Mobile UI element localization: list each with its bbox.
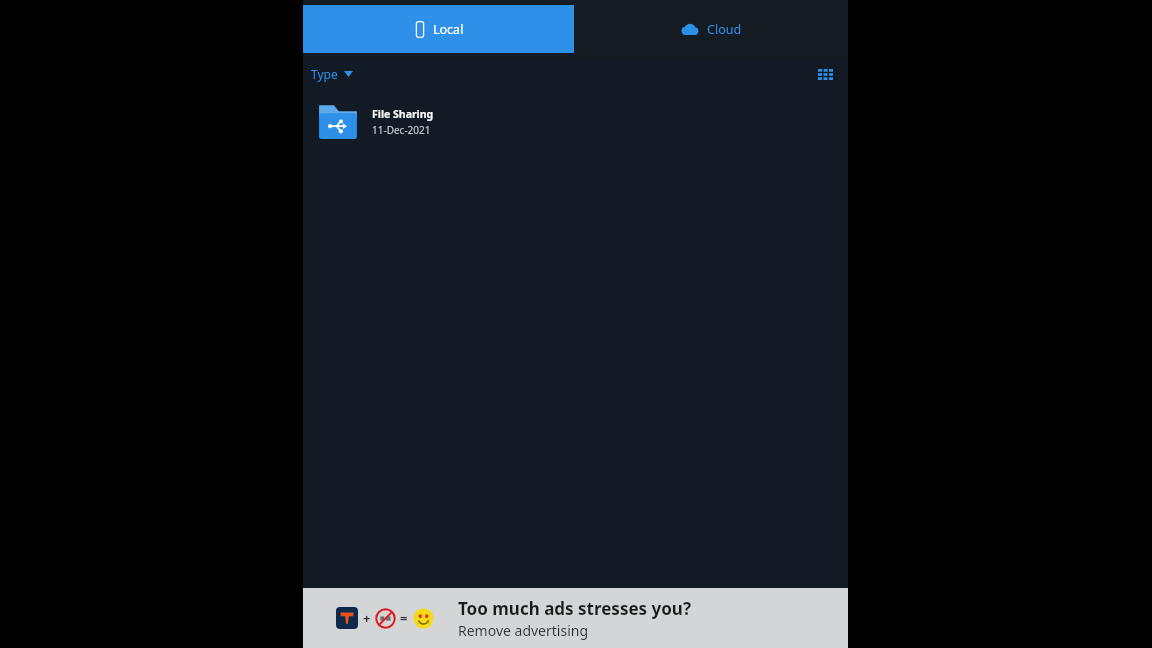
staticText: Too much ads stresses you? [458, 597, 692, 620]
staticText: File Sharing [372, 107, 434, 121]
staticText: + [363, 609, 371, 627]
button[interactable]: + [303, 588, 848, 648]
button[interactable]: File Sharing [303, 99, 848, 145]
button[interactable]: Local [303, 5, 574, 53]
staticText: Local [433, 21, 464, 38]
staticText: Type [311, 66, 338, 82]
button[interactable]: Grid view [814, 65, 837, 84]
staticText: = [400, 609, 408, 627]
staticText: Cloud [707, 21, 742, 38]
button[interactable]: Cloud [574, 0, 848, 58]
button[interactable]: Type [307, 61, 357, 87]
staticText: Remove advertising [458, 621, 589, 640]
staticText: 11-Dec-2021 [372, 123, 431, 137]
